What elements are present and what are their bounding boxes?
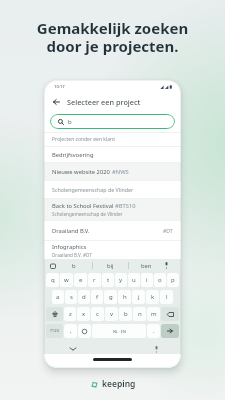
- staticText: b: [124, 310, 128, 318]
- button[interactable]: bij: [93, 262, 128, 270]
- staticText: x: [82, 310, 86, 318]
- staticText: w: [64, 276, 69, 284]
- button[interactable]: x: [77, 307, 90, 321]
- staticText: d: [82, 293, 86, 301]
- staticText: NL · EN: [113, 329, 126, 334]
- button[interactable]: keeping: [90, 378, 136, 390]
- staticText: h: [123, 293, 127, 301]
- button[interactable]: f: [91, 290, 103, 304]
- button[interactable]: [78, 324, 91, 338]
- staticText: ,: [70, 327, 72, 335]
- button[interactable]: u: [128, 273, 140, 287]
- button[interactable]: [161, 307, 179, 321]
- button[interactable]: g: [104, 290, 117, 304]
- staticText: b: [68, 118, 72, 126]
- button[interactable]: z: [64, 307, 76, 321]
- staticText: 10:17: [54, 84, 65, 90]
- staticText: bij: [107, 262, 114, 270]
- staticText: y: [119, 276, 123, 284]
- staticText: Selecteer een project: [67, 97, 141, 107]
- button[interactable]: l: [160, 290, 173, 304]
- button[interactable]: e: [74, 273, 87, 287]
- staticText: o: [158, 276, 162, 284]
- button[interactable]: p: [167, 273, 179, 287]
- button[interactable]: NL · EN: [92, 324, 146, 338]
- staticText: Infographics: [52, 243, 87, 251]
- staticText: i: [146, 276, 148, 284]
- staticText: e: [79, 276, 83, 284]
- staticText: u: [132, 276, 136, 284]
- staticText: m: [151, 310, 157, 318]
- staticText: v: [110, 310, 114, 318]
- button[interactable]: n: [133, 307, 146, 321]
- staticText: ?123: [50, 328, 60, 334]
- staticText: Nieuwe website 2020: [52, 168, 112, 176]
- button[interactable]: k: [146, 290, 159, 304]
- staticText: z: [69, 310, 72, 318]
- button[interactable]: m: [147, 307, 160, 321]
- staticText: .: [153, 327, 155, 335]
- button[interactable]: v: [105, 307, 118, 321]
- button[interactable]: Scholengemeenschap de Vlinder: [52, 181, 173, 198]
- button[interactable]: a: [52, 290, 64, 304]
- button[interactable]: Selecteer een project: [53, 93, 172, 110]
- button[interactable]: r: [88, 273, 101, 287]
- staticText: f: [96, 293, 99, 301]
- button[interactable]: c: [91, 307, 104, 321]
- staticText: Projecten zonder een klant: [52, 136, 115, 143]
- staticText: r: [93, 276, 96, 284]
- staticText: n: [138, 310, 142, 318]
- button[interactable]: d: [78, 290, 90, 304]
- button[interactable]: [161, 324, 179, 338]
- staticText: Back to School Festival: [52, 202, 115, 210]
- staticText: Draailand B.V. #DT: [52, 252, 92, 258]
- button[interactable]: Bedrijfsvoering: [52, 147, 173, 162]
- button[interactable]: s: [65, 290, 77, 304]
- staticText: t: [107, 276, 110, 284]
- staticText: ben: [141, 262, 152, 270]
- staticText: s: [70, 293, 73, 301]
- button[interactable]: i: [141, 273, 153, 287]
- button[interactable]: q: [46, 273, 59, 287]
- staticText: Scholengemeenschap de Vlinder: [52, 211, 123, 217]
- button[interactable]: .: [147, 324, 160, 338]
- button[interactable]: o: [154, 273, 166, 287]
- button[interactable]: h: [118, 290, 131, 304]
- staticText: Bedrijfsvoering: [52, 151, 94, 159]
- button[interactable]: Nieuwe website 2020: [52, 163, 173, 180]
- button[interactable]: w: [60, 273, 73, 287]
- staticText: Draailand B.V.: [52, 227, 90, 235]
- staticText: q: [51, 276, 55, 284]
- button[interactable]: Projecten zonder een klant: [52, 133, 173, 146]
- staticText: a: [56, 293, 60, 301]
- button[interactable]: b: [119, 307, 132, 321]
- button[interactable]: ben: [129, 262, 164, 270]
- button[interactable]: Draailand B.V.: [52, 221, 173, 240]
- staticText: Gemakkelijk zoeken door je projecten.: [0, 18, 225, 57]
- button[interactable]: t: [102, 273, 114, 287]
- staticText: k: [151, 293, 155, 301]
- button[interactable]: ,: [64, 324, 77, 338]
- staticText: g: [109, 293, 113, 301]
- staticText: b: [72, 262, 76, 270]
- staticText: j: [138, 293, 140, 301]
- staticText: p: [171, 276, 175, 284]
- button[interactable]: j: [132, 290, 145, 304]
- button[interactable]: Infographics: [52, 241, 173, 259]
- button[interactable]: Back to School Festival: [52, 199, 173, 220]
- button[interactable]: ?123: [46, 324, 63, 338]
- staticText: #NWS: [112, 168, 129, 176]
- button[interactable]: b: [50, 114, 175, 129]
- staticText: c: [96, 310, 99, 318]
- staticText: keeping: [102, 378, 136, 390]
- staticText: l: [166, 293, 168, 301]
- button[interactable]: y: [115, 273, 127, 287]
- staticText: #DT: [163, 228, 173, 235]
- button[interactable]: b: [56, 262, 92, 270]
- button[interactable]: [46, 307, 63, 321]
- staticText: #BTS10: [115, 202, 136, 210]
- staticText: Scholengemeenschap de Vlinder: [52, 186, 134, 193]
